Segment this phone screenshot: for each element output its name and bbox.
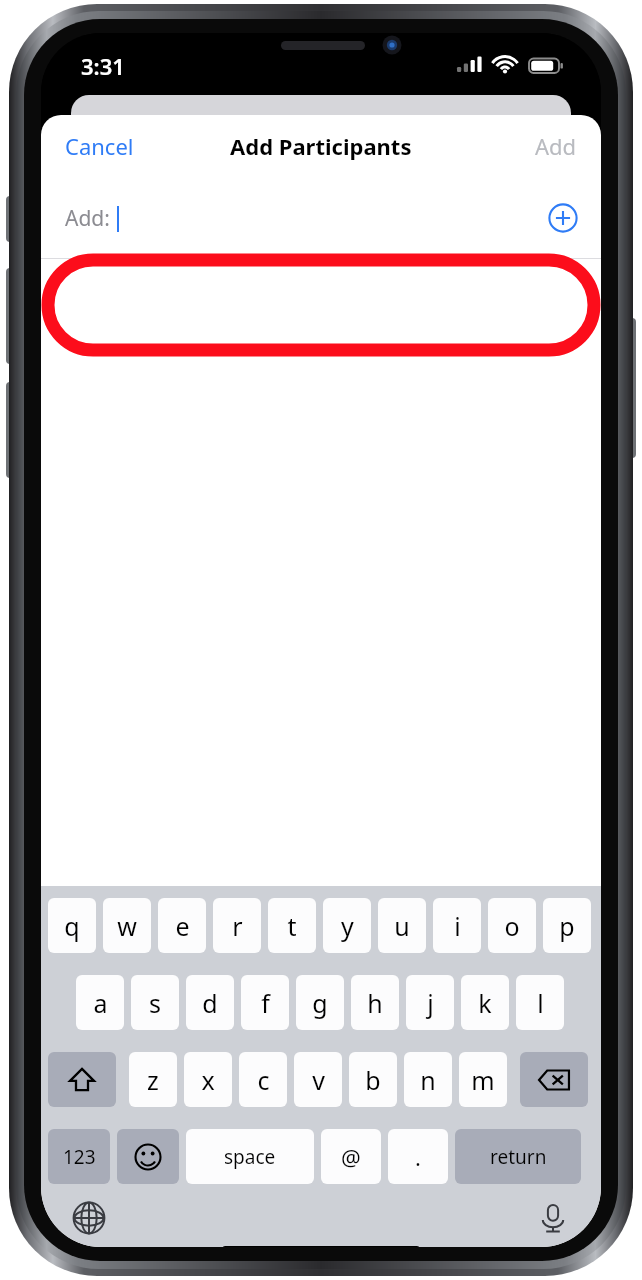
button[interactable]: v	[294, 1052, 342, 1107]
button[interactable]: Add contact	[545, 200, 581, 236]
staticText: @	[341, 1142, 361, 1172]
staticText: z	[147, 1063, 159, 1097]
button[interactable]: f	[241, 975, 289, 1030]
staticText: n	[420, 1063, 436, 1097]
staticText: 3:31	[81, 51, 125, 81]
button[interactable]: o	[488, 898, 536, 953]
button[interactable]: Add:	[41, 177, 601, 259]
staticText: m	[471, 1063, 495, 1097]
button[interactable]: s	[131, 975, 179, 1030]
button[interactable]: a	[76, 975, 124, 1030]
button[interactable]: g	[296, 975, 344, 1030]
button[interactable]: Numbers	[48, 1129, 110, 1184]
staticText: o	[504, 909, 520, 943]
staticText: x	[201, 1063, 215, 1097]
staticText: t	[287, 909, 297, 943]
button[interactable]: Add	[511, 119, 601, 173]
button[interactable]: r	[213, 898, 261, 953]
button[interactable]: n	[404, 1052, 452, 1107]
button[interactable]: Change keyboard	[67, 1196, 111, 1240]
button[interactable]: Shift	[48, 1052, 116, 1107]
staticText: Add Participants	[230, 131, 412, 161]
button[interactable]: Emoji	[117, 1129, 179, 1184]
button[interactable]: c	[239, 1052, 287, 1107]
button[interactable]: d	[186, 975, 234, 1030]
staticText: Add	[535, 131, 577, 161]
staticText: e	[175, 909, 190, 943]
staticText: return	[490, 1144, 547, 1170]
staticText: l	[537, 986, 544, 1020]
button[interactable]: b	[349, 1052, 397, 1107]
staticText: a	[93, 986, 108, 1020]
button[interactable]: h	[351, 975, 399, 1030]
button[interactable]: t	[268, 898, 316, 953]
staticText: d	[202, 986, 218, 1020]
button[interactable]: i	[433, 898, 481, 953]
button[interactable]: e	[158, 898, 206, 953]
staticText: h	[367, 986, 383, 1020]
button[interactable]: j	[406, 975, 454, 1030]
staticText: q	[64, 909, 80, 943]
button[interactable]: p	[543, 898, 591, 953]
button[interactable]: Dictation	[531, 1196, 575, 1240]
staticText: Cancel	[65, 131, 134, 161]
button[interactable]: u	[378, 898, 426, 953]
button[interactable]: Cancel	[41, 119, 158, 173]
button[interactable]: Period	[388, 1129, 448, 1184]
staticText: c	[257, 1063, 270, 1097]
staticText: space	[224, 1144, 276, 1170]
button[interactable]: return	[455, 1129, 581, 1184]
staticText: f	[261, 986, 270, 1020]
button[interactable]: z	[129, 1052, 177, 1107]
staticText: i	[454, 909, 461, 943]
button[interactable]: x	[184, 1052, 232, 1107]
staticText: s	[149, 986, 161, 1020]
button[interactable]: l	[516, 975, 564, 1030]
staticText: y	[341, 909, 354, 943]
staticText: g	[312, 986, 328, 1020]
staticText: u	[394, 909, 410, 943]
staticText: 123	[63, 1144, 96, 1170]
button[interactable]: At sign	[321, 1129, 381, 1184]
button[interactable]: Backspace	[520, 1052, 588, 1107]
staticText: j	[427, 986, 434, 1020]
staticText: v	[312, 1063, 325, 1097]
staticText: k	[478, 986, 492, 1020]
staticText: b	[365, 1063, 381, 1097]
button[interactable]: space	[186, 1129, 314, 1184]
staticText: Add:	[65, 204, 110, 233]
button[interactable]: q	[48, 898, 96, 953]
button[interactable]: k	[461, 975, 509, 1030]
staticText: w	[117, 909, 137, 943]
staticText: r	[232, 909, 243, 943]
button[interactable]: m	[459, 1052, 507, 1107]
button[interactable]: w	[103, 898, 151, 953]
staticText: p	[559, 909, 575, 943]
button[interactable]: y	[323, 898, 371, 953]
staticText: .	[415, 1142, 421, 1172]
